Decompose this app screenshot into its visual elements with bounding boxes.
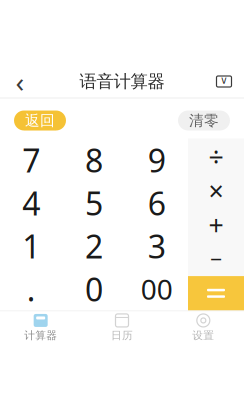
staticText: 语音计算器 <box>79 71 164 92</box>
staticText: ‹ <box>15 63 24 100</box>
staticText: . <box>27 268 36 310</box>
staticText: 4 <box>22 182 40 224</box>
staticText: + <box>208 207 223 242</box>
button[interactable]: Back <box>0 65 40 97</box>
button[interactable]: 清零 <box>178 110 230 130</box>
button[interactable]: 7 <box>0 138 63 181</box>
staticText: 0 <box>85 268 103 310</box>
button[interactable]: 9 <box>125 138 188 181</box>
button[interactable]: 4 <box>0 181 63 224</box>
staticText: 计算器 <box>24 329 57 342</box>
button[interactable]: 00 <box>125 267 188 310</box>
staticText: ∨ <box>220 74 228 86</box>
button[interactable]: + <box>188 207 244 242</box>
button[interactable]: Equals <box>188 276 244 310</box>
button[interactable]: 日历 <box>81 311 163 344</box>
staticText: ÷ <box>208 138 223 173</box>
button[interactable]: ÷ <box>188 138 244 173</box>
staticText: − <box>210 245 222 273</box>
staticText: 00 <box>141 270 173 308</box>
button[interactable]: 0 <box>63 267 125 310</box>
staticText: 3 <box>148 225 166 267</box>
staticText: 清零 <box>189 111 219 129</box>
staticText: 1 <box>22 225 40 267</box>
button[interactable]: 6 <box>125 181 188 224</box>
staticText: 7 <box>22 139 40 181</box>
staticText: 返回 <box>25 111 55 129</box>
button[interactable]: 3 <box>125 224 188 267</box>
staticText: 5 <box>85 182 103 224</box>
button[interactable]: 2 <box>63 224 125 267</box>
staticText: 9 <box>148 139 166 181</box>
button[interactable]: 5 <box>63 181 125 224</box>
button[interactable]: Messages <box>204 65 244 97</box>
button[interactable]: 计算器 <box>0 311 81 344</box>
staticText: 2 <box>85 225 103 267</box>
button[interactable]: − <box>188 242 244 276</box>
button[interactable]: 返回 <box>14 110 66 130</box>
staticText: 6 <box>148 182 166 224</box>
staticText: × <box>208 173 223 207</box>
button[interactable]: . <box>0 267 63 310</box>
button[interactable]: 1 <box>0 224 63 267</box>
staticText: 设置 <box>192 329 214 342</box>
button[interactable]: 设置 <box>163 311 244 344</box>
staticText: 日历 <box>111 329 133 342</box>
button[interactable]: 8 <box>63 138 125 181</box>
staticText: 8 <box>85 139 103 181</box>
button[interactable]: × <box>188 173 244 207</box>
